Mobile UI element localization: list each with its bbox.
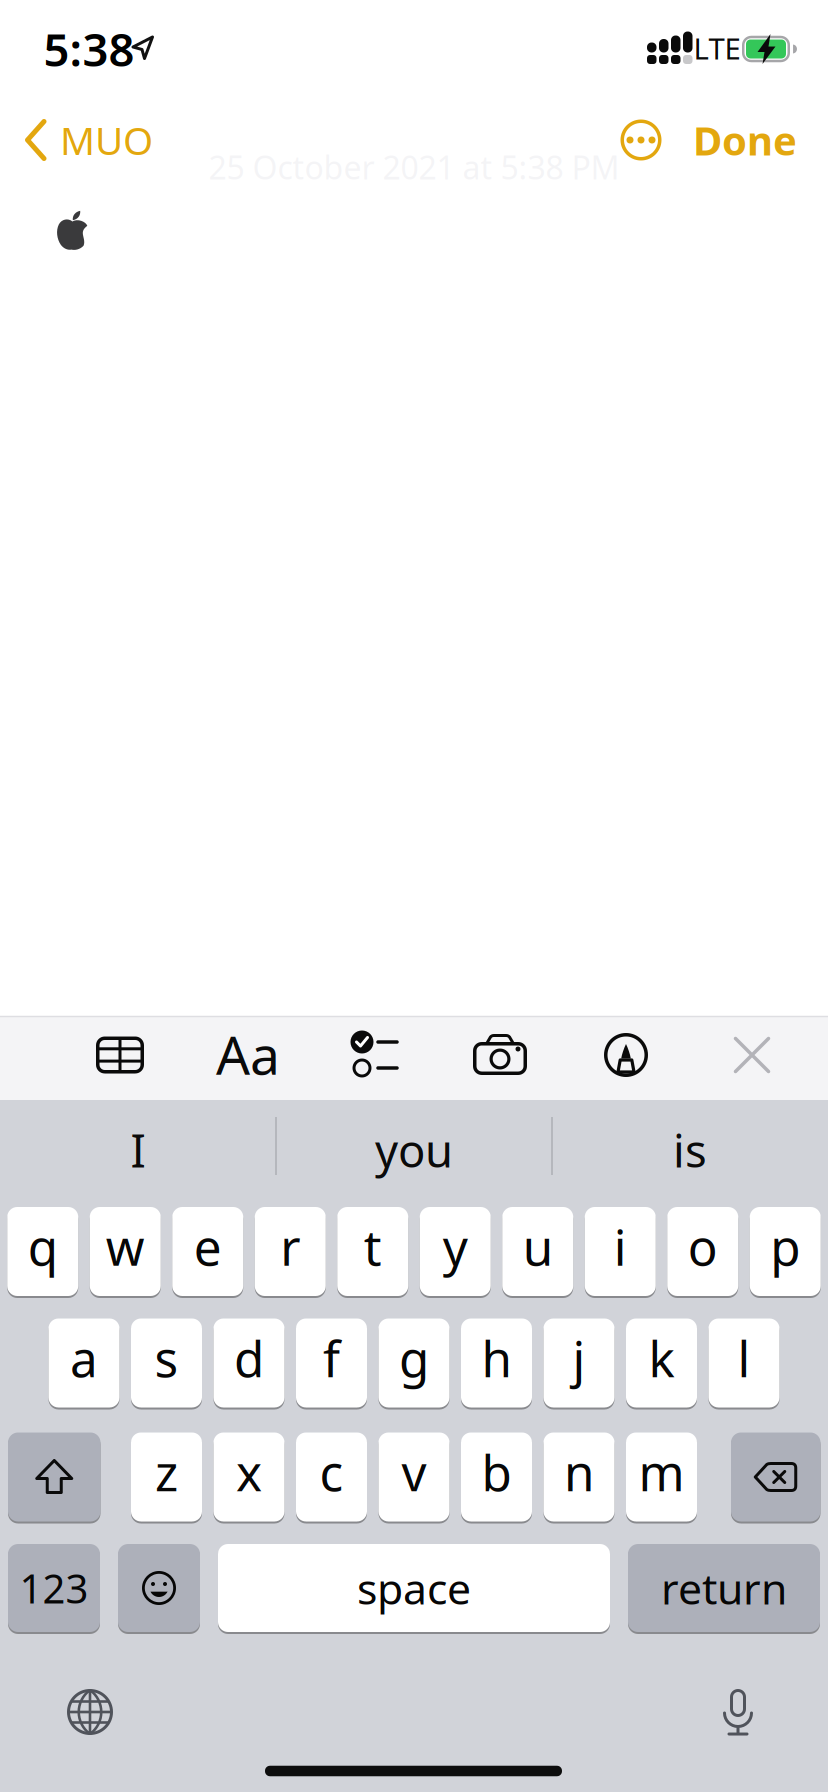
button[interactable]	[118, 1543, 200, 1633]
staticText: f	[323, 1325, 340, 1391]
staticText: Aa	[216, 1019, 280, 1089]
staticText: m	[638, 1439, 684, 1505]
staticText: l	[737, 1325, 750, 1391]
staticText: s	[154, 1325, 178, 1391]
button[interactable]: h	[461, 1317, 532, 1408]
button[interactable]: v	[378, 1431, 449, 1522]
button[interactable]: z	[131, 1431, 202, 1522]
staticText: e	[194, 1214, 222, 1279]
button[interactable]: j	[543, 1317, 614, 1408]
button[interactable]: space	[218, 1543, 610, 1633]
button[interactable]: i	[585, 1206, 656, 1297]
button[interactable]: t	[337, 1206, 408, 1297]
staticText: v	[401, 1439, 426, 1505]
button[interactable]: w	[90, 1206, 161, 1297]
button[interactable]: MUO	[25, 112, 153, 168]
staticText: 5:38	[43, 19, 134, 79]
button[interactable]: p	[750, 1206, 821, 1297]
staticText: j	[572, 1325, 585, 1391]
button[interactable]: Done	[693, 112, 797, 168]
staticText: y	[443, 1214, 468, 1279]
button[interactable]: you	[279, 1107, 549, 1193]
staticText: g	[399, 1325, 429, 1391]
staticText: d	[234, 1325, 264, 1391]
button[interactable]: y	[420, 1206, 491, 1297]
staticText: c	[319, 1439, 343, 1505]
button[interactable]	[472, 1034, 528, 1076]
staticText: return	[661, 1560, 787, 1616]
button[interactable]: return	[628, 1543, 820, 1633]
staticText: u	[523, 1214, 553, 1279]
button[interactable]: m	[626, 1431, 697, 1522]
staticText: a	[70, 1325, 98, 1391]
staticText: 25 October 2021 at 5:38 PM	[208, 146, 619, 188]
button[interactable]	[62, 1684, 118, 1740]
button[interactable]: a	[48, 1317, 119, 1408]
button[interactable]	[734, 1037, 770, 1073]
button[interactable]: is	[555, 1107, 825, 1193]
button[interactable]: 123	[8, 1543, 100, 1633]
staticText: LTE	[693, 28, 740, 67]
staticText: h	[481, 1325, 511, 1391]
button[interactable]: e	[172, 1206, 243, 1297]
button[interactable]: x	[213, 1431, 284, 1522]
button[interactable]: I	[3, 1107, 273, 1193]
staticText: n	[564, 1439, 594, 1505]
staticText: w	[106, 1214, 145, 1279]
button[interactable]: l	[708, 1317, 779, 1408]
button[interactable]: Aa	[210, 1022, 286, 1086]
staticText: MUO	[60, 114, 153, 166]
button[interactable]: n	[543, 1431, 614, 1522]
button[interactable]	[617, 116, 665, 164]
button[interactable]: d	[213, 1317, 284, 1408]
button[interactable]	[92, 1029, 148, 1081]
staticText: i	[614, 1214, 627, 1279]
staticText: p	[770, 1214, 800, 1279]
button[interactable]: q	[7, 1206, 78, 1297]
button[interactable]: u	[502, 1206, 573, 1297]
button[interactable]	[731, 1431, 820, 1522]
button[interactable]: r	[255, 1206, 326, 1297]
staticText: I	[130, 1120, 145, 1180]
staticText: t	[364, 1214, 382, 1279]
button[interactable]	[710, 1684, 766, 1740]
button[interactable]: s	[131, 1317, 202, 1408]
staticText: o	[688, 1214, 718, 1279]
staticText: z	[155, 1439, 178, 1505]
button[interactable]: b	[461, 1431, 532, 1522]
staticText: q	[28, 1214, 58, 1279]
button[interactable]: c	[296, 1431, 367, 1522]
button[interactable]	[604, 1033, 648, 1077]
button[interactable]	[8, 1431, 100, 1522]
staticText: Done	[693, 113, 797, 166]
staticText: 123	[19, 1561, 88, 1614]
button[interactable]: k	[626, 1317, 697, 1408]
staticText: b	[481, 1439, 511, 1505]
button[interactable]: g	[378, 1317, 449, 1408]
staticText: k	[648, 1325, 674, 1391]
staticText: x	[236, 1439, 262, 1505]
staticText: r	[280, 1214, 300, 1279]
button[interactable]	[348, 1029, 400, 1081]
staticText: you	[375, 1120, 453, 1180]
staticText: space	[357, 1560, 471, 1616]
button[interactable]: f	[296, 1317, 367, 1408]
button[interactable]: o	[667, 1206, 738, 1297]
staticText: is	[673, 1120, 707, 1180]
